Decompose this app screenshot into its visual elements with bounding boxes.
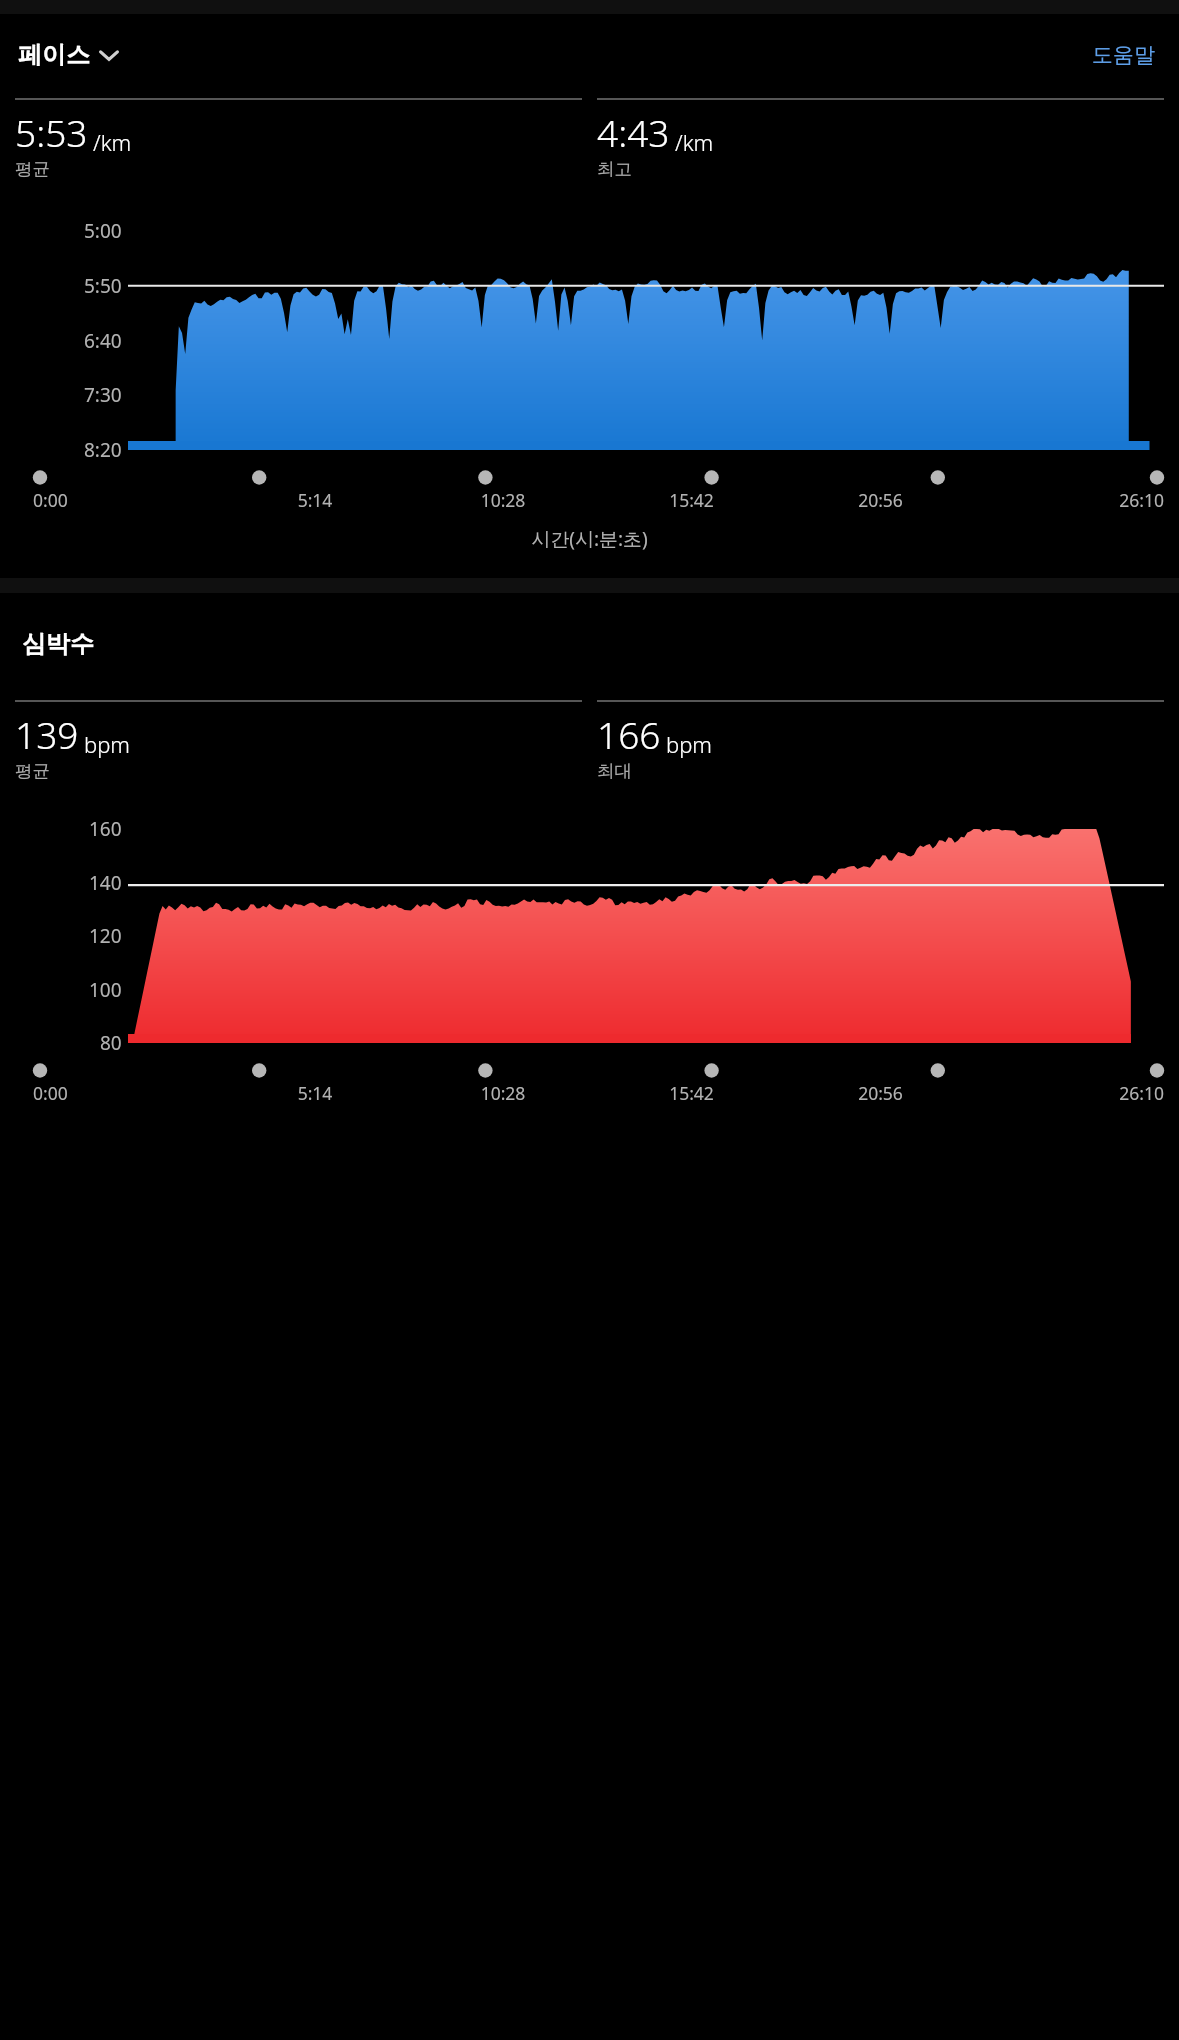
staticText: 160 — [89, 816, 122, 842]
staticText: 도움말 — [1092, 42, 1155, 68]
staticText: 26:10 — [975, 1081, 1164, 1105]
staticText: 4:43 — [597, 107, 670, 157]
staticText: bpm — [84, 729, 131, 759]
staticText: 139 — [15, 709, 79, 759]
staticText: 5:14 — [221, 488, 409, 512]
staticText: 10:28 — [409, 488, 597, 512]
staticText: 평균 — [15, 760, 50, 782]
button[interactable]: 페이스 — [14, 34, 123, 76]
staticText: 20:56 — [786, 1081, 975, 1105]
staticText: 0:00 — [33, 488, 221, 512]
button[interactable]: 도움말 — [1086, 36, 1161, 74]
staticText: 6:40 — [84, 328, 122, 354]
staticText: 15:42 — [597, 488, 786, 512]
staticText: /km — [675, 127, 714, 157]
staticText: 20:56 — [786, 488, 975, 512]
staticText: 최대 — [597, 760, 632, 782]
staticText: 100 — [89, 977, 122, 1003]
staticText: 5:14 — [221, 1081, 409, 1105]
staticText: 10:28 — [409, 1081, 597, 1105]
staticText: bpm — [666, 729, 713, 759]
staticText: 120 — [89, 923, 122, 949]
staticText: 5:00 — [84, 218, 122, 244]
staticText: 8:20 — [84, 437, 122, 463]
staticText: 26:10 — [975, 488, 1164, 512]
staticText: 7:30 — [84, 382, 122, 408]
staticText: 140 — [89, 870, 122, 896]
staticText: 5:53 — [15, 107, 88, 157]
staticText: /km — [93, 127, 132, 157]
staticText: 166 — [597, 709, 661, 759]
staticText: 페이스 — [18, 40, 90, 70]
staticText: 시간(시:분:초) — [0, 526, 1179, 552]
staticText: 최고 — [597, 158, 632, 180]
staticText: 80 — [100, 1030, 122, 1056]
staticText: 5:50 — [84, 273, 122, 299]
staticText: 0:00 — [33, 1081, 221, 1105]
staticText: 15:42 — [597, 1081, 786, 1105]
staticText: 평균 — [15, 158, 50, 180]
button[interactable]: 심박수 — [18, 625, 98, 663]
staticText: 심박수 — [22, 629, 94, 659]
